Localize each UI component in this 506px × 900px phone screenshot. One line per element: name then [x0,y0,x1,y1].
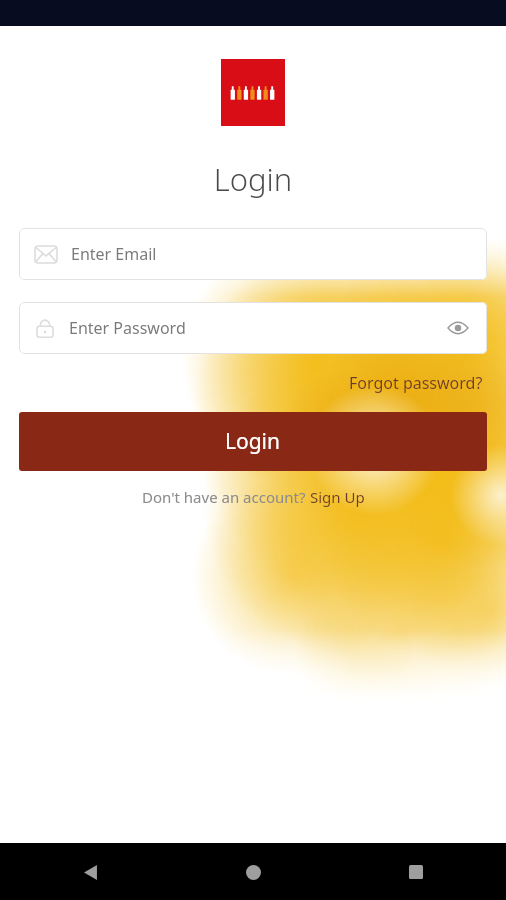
staticText: Forgot password? [349,372,483,394]
button[interactable]: Home [233,852,273,892]
staticText: Enter Password [69,317,443,339]
button[interactable]: Enter Password [19,302,487,354]
button[interactable]: Sign Up [310,487,365,507]
staticText: Login [225,427,281,456]
button[interactable]: Login [19,412,487,471]
staticText: Enter Email [71,243,157,265]
button[interactable]: Forgot password? [345,368,487,398]
staticText: Don't have an account? [142,487,310,507]
button[interactable]: Recent apps [396,852,436,892]
staticText: Sign Up [310,487,365,507]
staticText: Login [0,158,506,200]
button[interactable]: Back [70,852,110,892]
button[interactable]: Enter Email [19,228,487,280]
button[interactable]: Show password [443,313,473,343]
